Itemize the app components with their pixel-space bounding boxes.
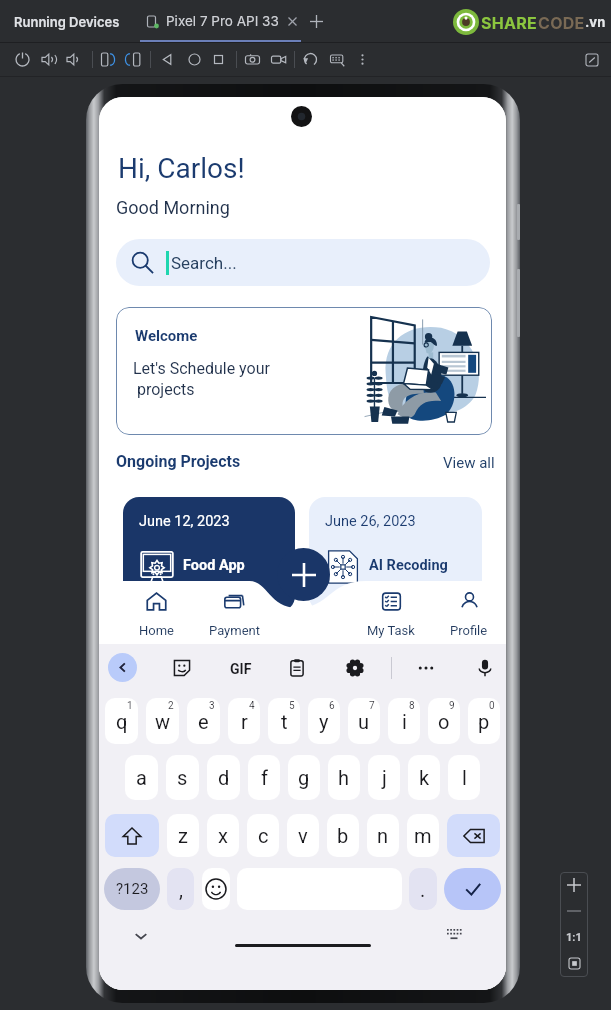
staticText: .vn (585, 14, 606, 30)
button[interactable]: z (167, 814, 199, 857)
button[interactable]: View all (443, 454, 495, 472)
button[interactable]: Volume up (36, 47, 61, 72)
staticText: 7 (369, 700, 375, 712)
button[interactable]: i (388, 698, 420, 744)
button[interactable]: k (408, 755, 440, 800)
button[interactable]: o (428, 698, 460, 744)
button[interactable]: f (248, 755, 280, 800)
button[interactable]: 1:1 (560, 924, 588, 950)
button[interactable]: q (105, 698, 138, 744)
button[interactable]: Overview (206, 47, 231, 72)
staticText: CODE (538, 13, 585, 32)
staticText: AI Recoding (369, 557, 448, 574)
button[interactable]: Rotate right (120, 47, 145, 72)
button[interactable]: Settings (340, 653, 369, 682)
staticText: 2 (168, 700, 174, 712)
staticText: x (218, 824, 228, 847)
button[interactable]: Clipboard (282, 653, 311, 682)
button[interactable]: h (328, 755, 360, 800)
button[interactable]: r (228, 698, 260, 744)
staticText: k (419, 766, 430, 789)
button[interactable]: History (298, 47, 323, 72)
button[interactable]: My Task (353, 584, 429, 641)
button[interactable]: Fit to screen (560, 950, 588, 976)
button[interactable]: Stickers (167, 653, 196, 682)
button[interactable]: Back (155, 47, 180, 72)
staticText: 1:1 (566, 931, 582, 944)
button[interactable]: Zoom in (560, 872, 588, 898)
button[interactable]: c (247, 814, 279, 857)
button[interactable]: s (166, 755, 199, 800)
button[interactable]: Hide keyboard (129, 924, 153, 948)
button[interactable]: Rotate left (95, 47, 120, 72)
staticText: u (358, 710, 370, 733)
staticText: Running Devices (14, 14, 120, 30)
button[interactable]: Emoji (202, 868, 230, 910)
staticText: n (377, 824, 389, 847)
staticText: , (179, 878, 183, 901)
button[interactable]: Change keyboard (444, 926, 464, 946)
button[interactable]: June 12, 2023 (123, 497, 295, 612)
button[interactable]: Welcome (116, 307, 492, 435)
button[interactable]: j (368, 755, 400, 800)
button[interactable]: GIF (226, 661, 256, 675)
staticText: 6 (329, 700, 335, 712)
button[interactable]: Power (10, 47, 35, 72)
button[interactable]: a (125, 755, 158, 800)
staticText: i (402, 710, 407, 733)
staticText: Let's Schedule your projects (133, 359, 270, 399)
button[interactable]: m (407, 814, 439, 857)
staticText: b (337, 824, 349, 847)
button[interactable]: x (207, 814, 239, 857)
button[interactable]: Record screen (266, 47, 291, 72)
button[interactable]: v (287, 814, 319, 857)
button[interactable]: Payment (196, 584, 272, 641)
button[interactable]: Expand (581, 49, 603, 71)
button[interactable]: g (288, 755, 320, 800)
staticText: t (281, 710, 288, 733)
button[interactable]: Screenshot (240, 47, 265, 72)
button[interactable]: Voice input (470, 653, 499, 682)
button[interactable]: Enter (444, 868, 501, 910)
staticText: Welcome (135, 327, 198, 345)
staticText: q (116, 710, 128, 733)
button[interactable]: Profile (431, 584, 506, 641)
button[interactable]: u (348, 698, 380, 744)
button[interactable]: Backspace (447, 814, 500, 857)
button[interactable]: ?123 (104, 868, 160, 910)
button[interactable]: d (207, 755, 240, 800)
staticText: 5 (289, 700, 295, 712)
button[interactable]: , (167, 868, 194, 910)
button[interactable]: Zoom out (560, 898, 588, 924)
staticText: 8 (409, 700, 415, 712)
staticText: e (198, 710, 209, 733)
button[interactable]: n (367, 814, 399, 857)
button[interactable]: l (448, 755, 480, 800)
button[interactable]: Volume down (61, 47, 86, 72)
button[interactable]: Home (118, 584, 194, 641)
button[interactable]: w (146, 698, 179, 744)
button[interactable]: Home (182, 47, 207, 72)
button[interactable]: June 26, 2023 (309, 497, 482, 612)
button[interactable]: Add project (277, 548, 330, 601)
button[interactable]: More (350, 47, 375, 72)
button[interactable]: e (187, 698, 220, 744)
button[interactable]: Add device (307, 12, 325, 30)
button[interactable]: Back (108, 653, 137, 682)
button[interactable]: Shift (105, 814, 159, 857)
button[interactable]: p (468, 698, 500, 744)
button[interactable]: Pixel 7 Pro API 33 (141, 0, 303, 42)
button[interactable]: b (327, 814, 359, 857)
button[interactable]: y (308, 698, 340, 744)
staticText: Payment (209, 623, 260, 638)
staticText: j (382, 766, 387, 789)
staticText: z (178, 824, 188, 847)
button[interactable]: t (268, 698, 300, 744)
button[interactable]: Search... (116, 239, 490, 286)
staticText: a (136, 766, 147, 789)
button[interactable]: More options (411, 653, 440, 682)
button[interactable]: . (409, 868, 437, 910)
button[interactable]: Keyboard shortcuts (325, 47, 350, 72)
staticText: Good Morning (116, 197, 230, 218)
